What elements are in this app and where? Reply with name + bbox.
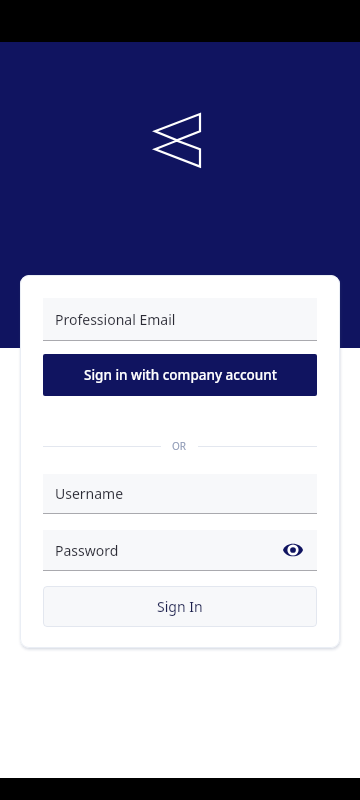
- button[interactable]: Password: [43, 530, 317, 571]
- button[interactable]: Show password: [281, 538, 305, 562]
- button[interactable]: Sign In: [43, 586, 317, 627]
- staticText: Sign in with company account: [84, 366, 277, 384]
- staticText: Professional Email: [55, 310, 305, 329]
- staticText: Sign In: [157, 597, 203, 616]
- staticText: Username: [55, 484, 305, 503]
- button[interactable]: Username: [43, 474, 317, 514]
- staticText: OR: [172, 439, 187, 453]
- button[interactable]: Professional Email: [43, 298, 317, 341]
- staticText: Password: [55, 541, 281, 560]
- button[interactable]: Sign in with company account: [43, 354, 317, 396]
